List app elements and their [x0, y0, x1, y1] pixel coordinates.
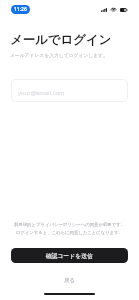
button[interactable]: 戻る	[58, 275, 81, 286]
button[interactable]: your@email.com	[11, 79, 128, 102]
staticText: メールアドレスを入力してログインします。	[10, 52, 108, 58]
staticText: 11:26	[14, 6, 27, 13]
staticText: 確認コードを送信	[46, 252, 93, 259]
staticText: your@email.com	[18, 89, 65, 97]
other: Cellular signal	[101, 8, 107, 12]
other: Wi-Fi	[111, 8, 116, 12]
button[interactable]: 確認コードを送信	[11, 248, 128, 263]
staticText: 利用規約とプライバシーポリシーへの同意が必要です。 ログインすると、これらに同意…	[8, 222, 131, 236]
staticText: メールでログイン	[10, 32, 112, 48]
other: Battery	[120, 8, 128, 12]
